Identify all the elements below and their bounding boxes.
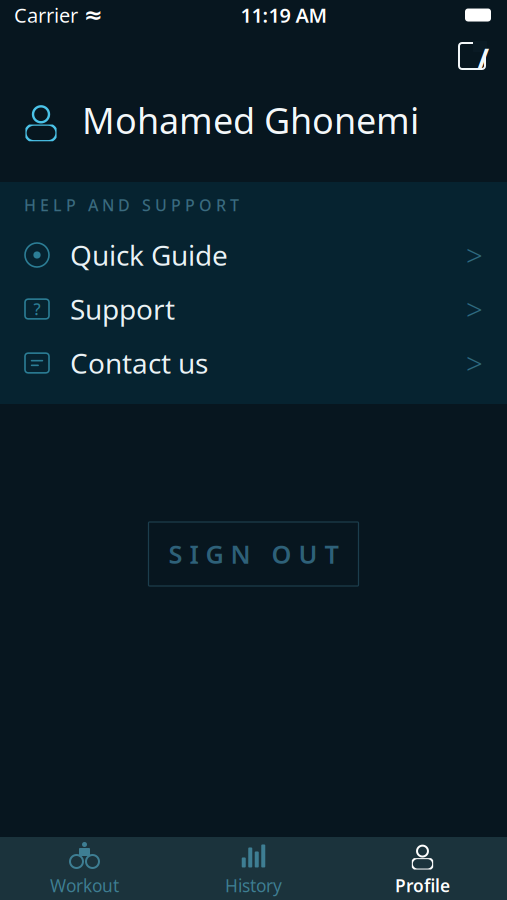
- staticText: ≈: [84, 2, 103, 28]
- button[interactable]: Workout: [0, 833, 169, 900]
- staticText: >: [466, 235, 483, 274]
- staticText: Quick Guide: [70, 236, 228, 274]
- button[interactable]: S I G N O U T: [148, 522, 358, 586]
- staticText: Workout: [50, 874, 119, 897]
- staticText: >: [466, 343, 483, 382]
- staticText: /: [477, 39, 489, 78]
- button[interactable]: Edit profile: [455, 35, 507, 73]
- button[interactable]: History: [169, 833, 338, 900]
- staticText: Profile: [395, 874, 450, 897]
- staticText: H E L P A N D S U P P O R T: [24, 194, 239, 216]
- staticText: ?: [33, 298, 40, 320]
- staticText: Contact us: [70, 344, 208, 382]
- staticText: Carrier: [14, 2, 78, 28]
- button[interactable]: Contact us: [0, 336, 507, 390]
- staticText: Support: [70, 290, 175, 328]
- staticText: 11:19 AM: [240, 2, 327, 28]
- staticText: History: [225, 874, 282, 897]
- staticText: Mohamed Ghonemi: [82, 96, 419, 144]
- button[interactable]: Profile: [338, 833, 507, 900]
- staticText: >: [466, 289, 483, 328]
- button[interactable]: ?: [0, 282, 507, 336]
- staticText: S I G N O U T: [168, 537, 338, 571]
- button[interactable]: Quick Guide: [0, 228, 507, 282]
